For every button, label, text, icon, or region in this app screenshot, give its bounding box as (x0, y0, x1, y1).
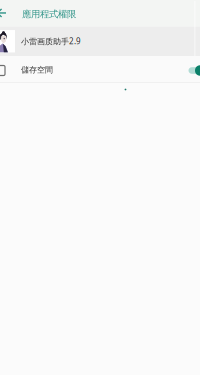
button[interactable]: Back (0, 1, 22, 26)
staticText: 小雷画质助手2.9 (21, 36, 81, 46)
staticText: 應用程式權限 (22, 8, 76, 20)
staticText: 儲存空間 (21, 65, 53, 75)
button[interactable]: 小雷画质助手2.9 (0, 26, 200, 56)
button[interactable]: 儲存空間 (0, 56, 200, 82)
